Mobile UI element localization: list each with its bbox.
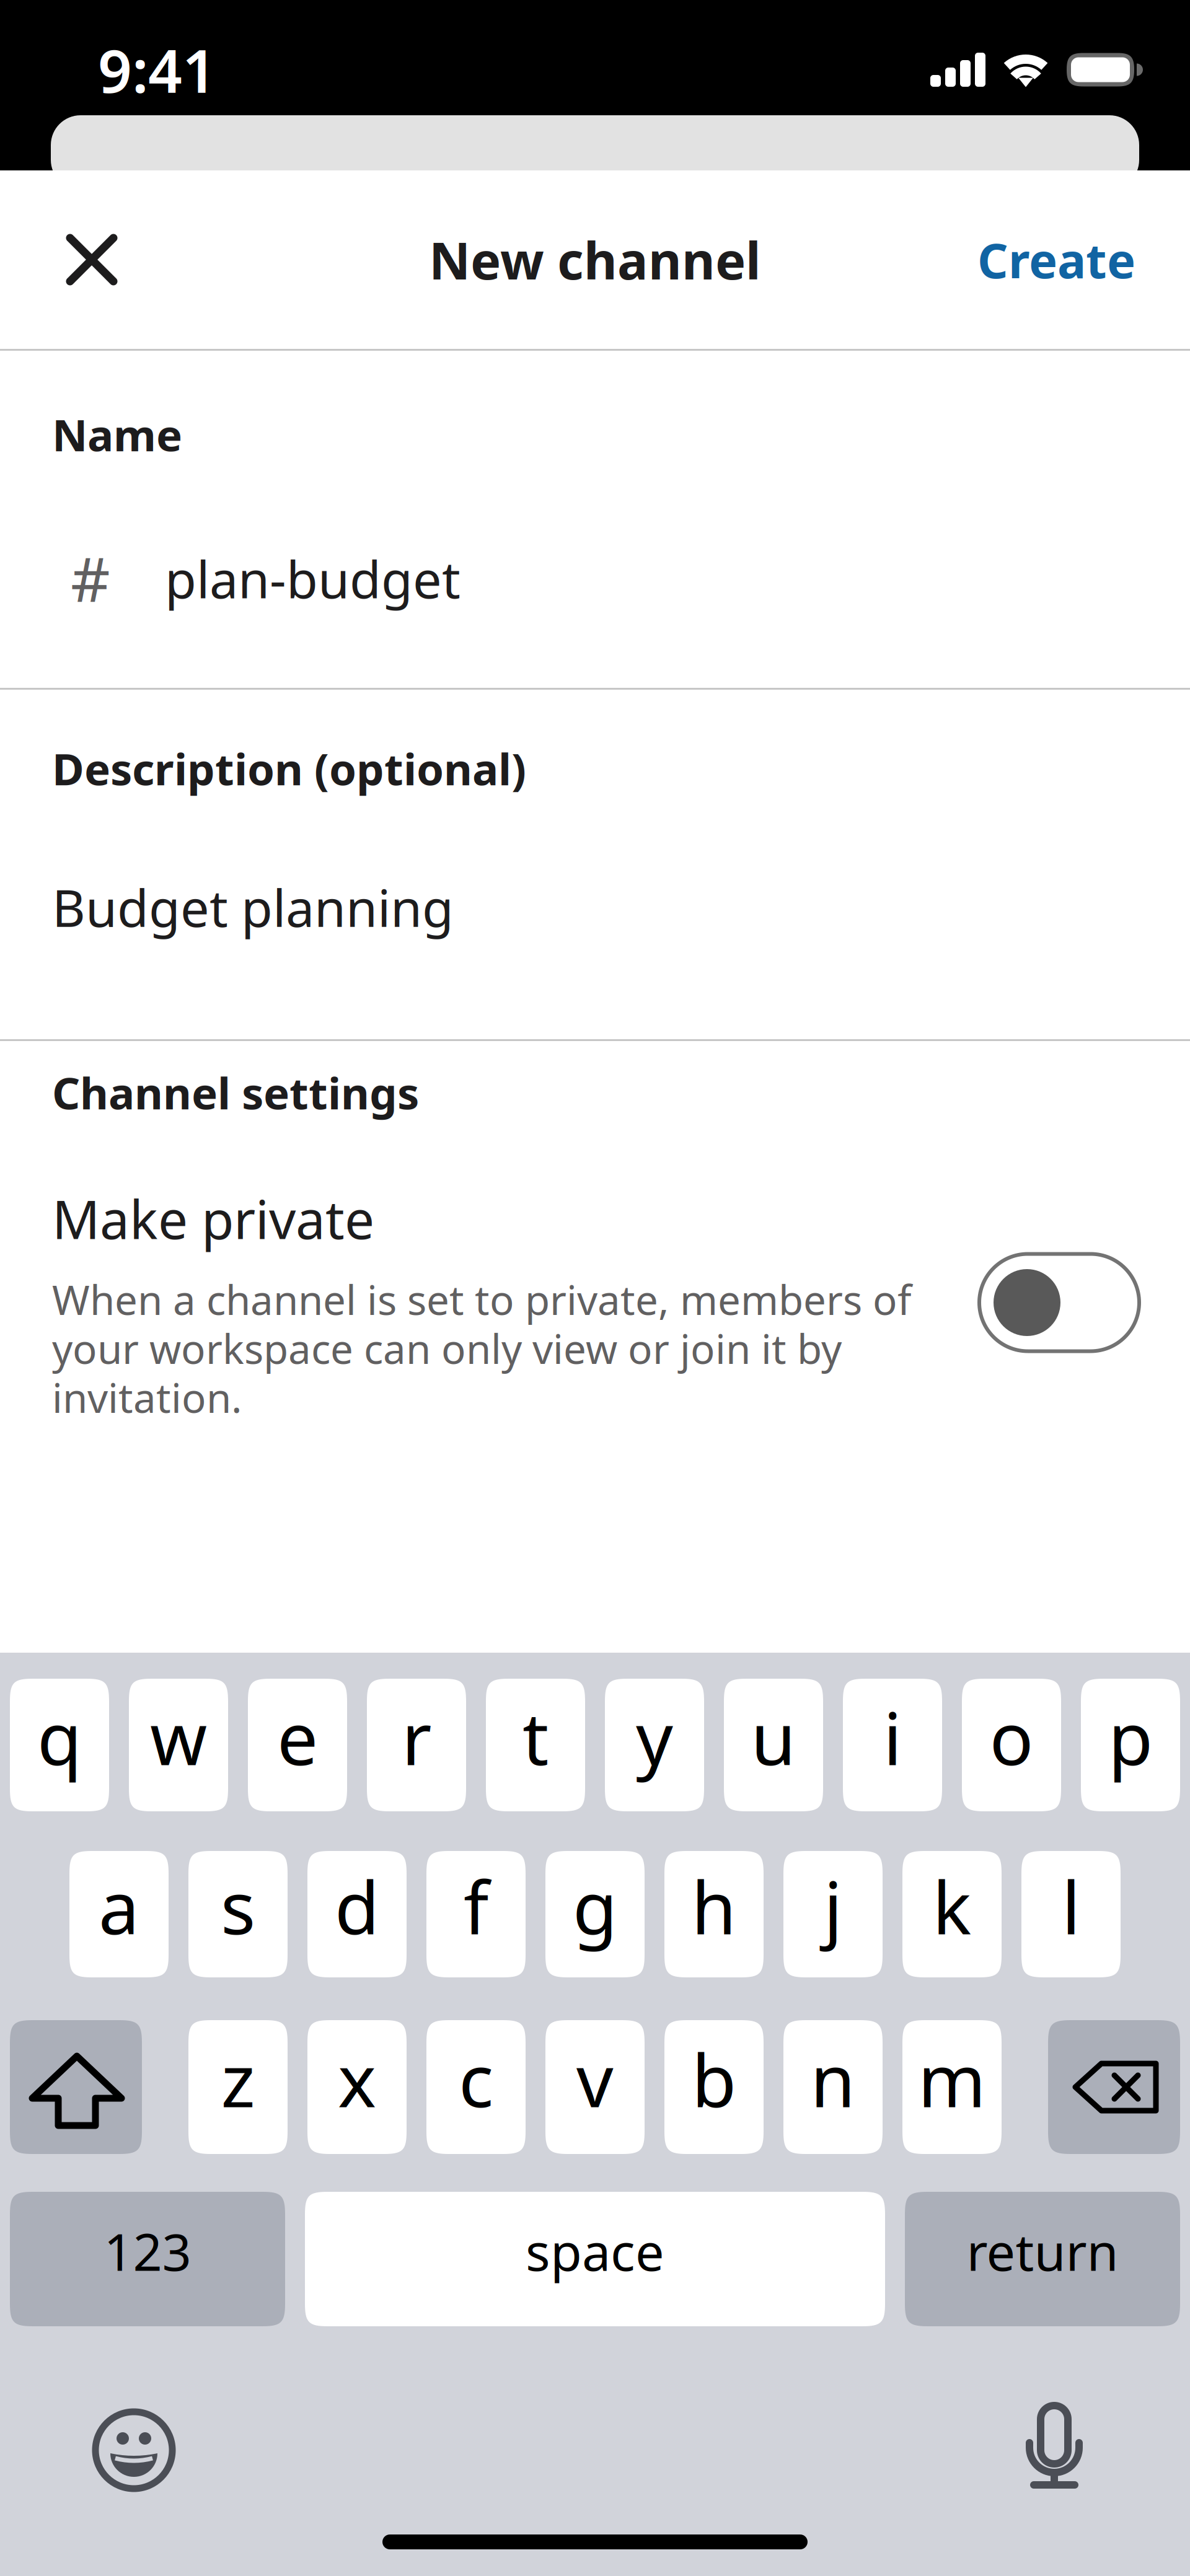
button[interactable]: i — [843, 1679, 942, 1811]
staticText: o — [989, 1689, 1034, 1785]
staticText: i — [883, 1689, 902, 1785]
staticText: Make private — [52, 1183, 374, 1254]
staticText: plan-budget — [165, 544, 461, 612]
button[interactable]: u — [724, 1679, 823, 1811]
staticText: your workspace can only view or join it … — [52, 1321, 842, 1375]
staticText: w — [150, 1689, 207, 1785]
button[interactable]: Delete — [1048, 2020, 1180, 2154]
staticText: q — [37, 1689, 82, 1785]
button[interactable]: y — [605, 1679, 704, 1811]
button[interactable]: b — [664, 2020, 764, 2154]
staticText: p — [1108, 1689, 1153, 1785]
staticText: return — [967, 2217, 1118, 2285]
staticText: j — [824, 1858, 842, 1954]
staticText: e — [277, 1689, 318, 1785]
staticText: g — [573, 1858, 617, 1954]
staticText: m — [918, 2031, 986, 2127]
staticText: v — [576, 2031, 614, 2127]
staticText: f — [464, 1858, 488, 1954]
button[interactable]: space — [305, 2192, 885, 2326]
staticText: y — [636, 1689, 673, 1785]
staticText: Budget planning — [52, 873, 454, 941]
button[interactable]: Close — [35, 201, 149, 319]
staticText: x — [338, 2031, 376, 2127]
staticText: s — [221, 1858, 255, 1954]
button[interactable]: h — [664, 1851, 764, 1977]
button[interactable]: d — [307, 1851, 407, 1977]
staticText: # — [71, 538, 110, 619]
staticText: u — [751, 1689, 796, 1785]
staticText: space — [526, 2217, 664, 2285]
staticText: Description (optional) — [52, 739, 526, 797]
button[interactable]: s — [188, 1851, 288, 1977]
staticText: z — [221, 2031, 255, 2127]
button[interactable]: c — [426, 2020, 526, 2154]
staticText: r — [402, 1689, 431, 1785]
button[interactable]: q — [10, 1679, 109, 1811]
button[interactable]: p — [1081, 1679, 1180, 1811]
button[interactable]: return — [905, 2192, 1180, 2326]
button[interactable]: g — [545, 1851, 645, 1977]
staticText: d — [335, 1858, 379, 1954]
button[interactable]: z — [188, 2020, 288, 2154]
button[interactable]: 123 — [10, 2192, 285, 2326]
button[interactable]: r — [367, 1679, 466, 1811]
staticText: k — [932, 1858, 972, 1954]
staticText: n — [810, 2031, 856, 2127]
button[interactable]: f — [426, 1851, 526, 1977]
staticText: l — [1062, 1858, 1080, 1954]
button[interactable]: Make private — [979, 1254, 1139, 1351]
button[interactable]: t — [486, 1679, 585, 1811]
button[interactable]: l — [1021, 1851, 1121, 1977]
button[interactable]: m — [902, 2020, 1002, 2154]
button[interactable]: v — [545, 2020, 645, 2154]
staticText: 123 — [104, 2217, 191, 2285]
button[interactable]: j — [783, 1851, 883, 1977]
button[interactable]: n — [783, 2020, 883, 2154]
staticText: When a channel is set to private, member… — [52, 1272, 911, 1326]
staticText: h — [691, 1858, 737, 1954]
button[interactable]: Create — [977, 201, 1135, 319]
staticText: 9:41 — [98, 30, 216, 109]
button[interactable]: Shift — [10, 2020, 142, 2154]
button[interactable]: o — [962, 1679, 1061, 1811]
button[interactable]: e — [248, 1679, 347, 1811]
staticText: t — [522, 1689, 549, 1785]
button[interactable]: Emoji keyboard — [87, 2398, 180, 2491]
button[interactable]: x — [307, 2020, 407, 2154]
staticText: Channel settings — [52, 1063, 419, 1121]
button[interactable]: w — [129, 1679, 228, 1811]
staticText: New channel — [429, 226, 761, 294]
staticText: c — [459, 2031, 493, 2127]
staticText: a — [99, 1858, 139, 1954]
staticText: Create — [977, 228, 1135, 291]
button[interactable]: Dictation — [1008, 2398, 1101, 2491]
button[interactable]: a — [69, 1851, 169, 1977]
staticText: invitation. — [52, 1370, 242, 1424]
button[interactable]: k — [902, 1851, 1002, 1977]
staticText: b — [692, 2031, 736, 2127]
staticText: Name — [52, 405, 182, 463]
